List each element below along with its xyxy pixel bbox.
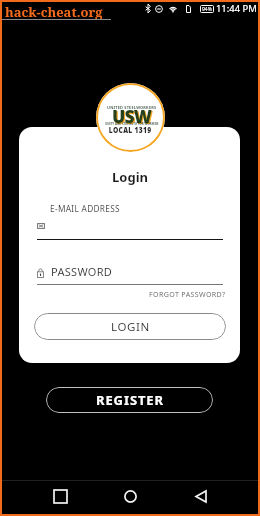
button[interactable]: Recent apps xyxy=(44,480,77,513)
staticText: 11:44 PM xyxy=(216,2,257,15)
staticText: E-MAIL ADDRESS xyxy=(50,203,120,214)
staticText: 94% xyxy=(202,6,212,13)
staticText: USW xyxy=(113,105,153,129)
staticText: hack-cheat.org xyxy=(5,3,103,21)
staticText: Login xyxy=(0,168,260,186)
button[interactable]: FORGOT PASSWORD? xyxy=(147,287,228,301)
button[interactable]: LOGIN xyxy=(34,313,226,340)
staticText: LOCAL 1319 xyxy=(109,124,152,136)
button[interactable]: Back xyxy=(184,480,217,513)
staticText: REGISTER xyxy=(96,391,164,409)
staticText: USW xyxy=(112,104,152,128)
button[interactable]: REGISTER xyxy=(46,387,213,413)
staticText: UNITED STEELWORKERS xyxy=(107,105,157,110)
staticText: UNITY AND STRENGTH FOR WORKERS xyxy=(105,122,159,126)
button[interactable]: Home xyxy=(114,480,147,513)
staticText: LOGIN xyxy=(111,319,150,335)
staticText: PASSWORD xyxy=(51,264,113,279)
